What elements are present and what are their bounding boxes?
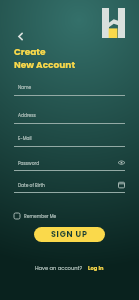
staticText: Password [18,160,40,166]
staticText: Remember Me [24,213,57,219]
button[interactable]: Log In [88,265,104,272]
button[interactable]: Back [12,28,28,44]
staticText: Name [18,84,32,90]
staticText: Date of Birth [18,182,45,188]
button[interactable]: SIGN UP [34,227,105,242]
button[interactable]: Remember Me [14,213,57,219]
staticText: New Account [14,59,76,72]
staticText: Address [18,112,36,118]
staticText: Create [14,46,46,59]
staticText: Have an account? [35,265,83,272]
staticText: Log In [88,265,104,272]
staticText: SIGN UP [51,229,88,240]
staticText: E-Mail [18,135,32,141]
